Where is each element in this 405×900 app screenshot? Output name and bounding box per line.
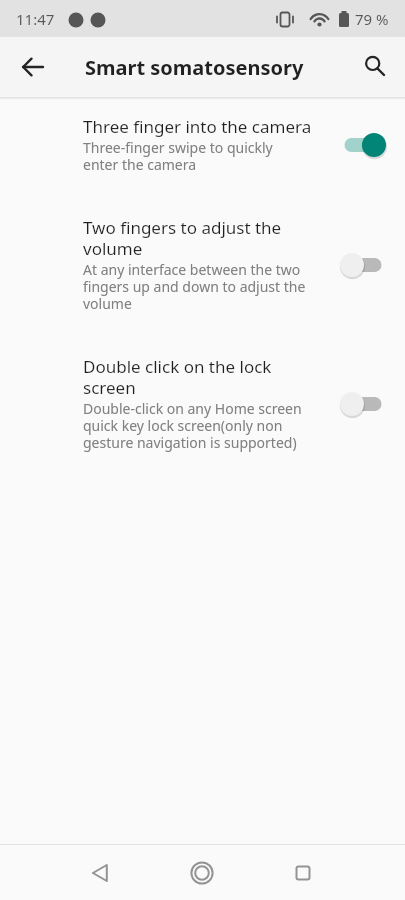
staticText: Double click on the lock screen: [83, 355, 272, 399]
button[interactable]: Two fingers to adjust the volume: [0, 201, 405, 340]
staticText: Three finger into the camera: [83, 115, 312, 138]
staticText: Smart somatosensory: [85, 54, 304, 81]
button[interactable]: [178, 849, 226, 897]
button[interactable]: [279, 849, 327, 897]
button[interactable]: [340, 252, 386, 278]
button[interactable]: [340, 132, 386, 158]
button[interactable]: Three finger into the camera: [0, 100, 405, 201]
staticText: Two fingers to adjust the volume: [83, 216, 282, 260]
button[interactable]: [9, 43, 57, 91]
button[interactable]: [350, 43, 398, 91]
button[interactable]: [340, 391, 386, 417]
button[interactable]: [76, 849, 124, 897]
button[interactable]: Double click on the lock screen: [0, 340, 405, 479]
staticText: At any interface between the two fingers…: [83, 260, 306, 313]
staticText: Three-finger swipe to quickly enter the …: [83, 138, 273, 174]
staticText: 11:47: [16, 9, 55, 29]
staticText: Double-click on any Home screen quick ke…: [83, 399, 302, 452]
staticText: 79 %: [355, 9, 389, 29]
